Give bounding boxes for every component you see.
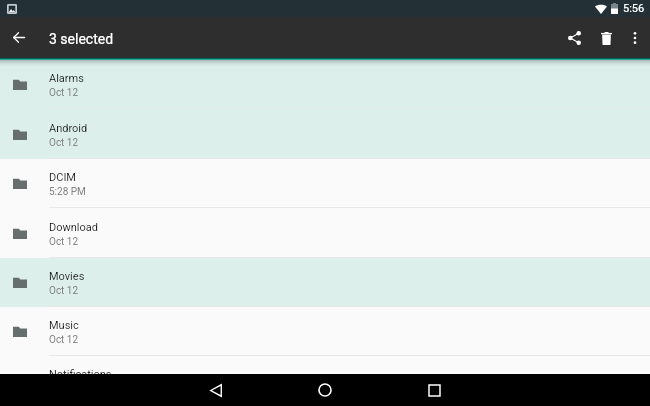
- button[interactable]: Download: [0, 208, 650, 258]
- staticText: Music: [49, 319, 79, 332]
- button[interactable]: More options: [619, 17, 650, 58]
- button[interactable]: Movies: [0, 258, 650, 307]
- button[interactable]: Alarms: [0, 60, 650, 109]
- staticText: Movies: [49, 270, 85, 283]
- staticText: Android: [49, 122, 88, 135]
- staticText: Notifications: [49, 368, 112, 374]
- staticText: Oct 12: [49, 87, 79, 99]
- staticText: Download: [49, 221, 98, 234]
- button[interactable]: Recent apps: [396, 374, 472, 406]
- button[interactable]: Music: [0, 307, 650, 356]
- button[interactable]: Share: [554, 17, 594, 58]
- staticText: Oct 12: [49, 137, 79, 149]
- button[interactable]: DCIM: [0, 159, 650, 208]
- staticText: Oct 12: [49, 334, 79, 346]
- staticText: 5:56: [623, 2, 645, 15]
- button[interactable]: Notifications: [0, 356, 650, 374]
- button[interactable]: Home: [287, 374, 363, 406]
- staticText: Oct 12: [49, 285, 79, 297]
- staticText: 3 selected: [49, 31, 114, 47]
- staticText: DCIM: [49, 171, 76, 184]
- button[interactable]: Android: [0, 109, 650, 159]
- button[interactable]: Back: [178, 374, 254, 406]
- staticText: Oct 12: [49, 236, 79, 248]
- button[interactable]: Delete: [594, 17, 619, 58]
- button[interactable]: Back: [0, 17, 37, 58]
- staticText: Alarms: [49, 72, 84, 85]
- staticText: 5:28 PM: [49, 186, 86, 198]
